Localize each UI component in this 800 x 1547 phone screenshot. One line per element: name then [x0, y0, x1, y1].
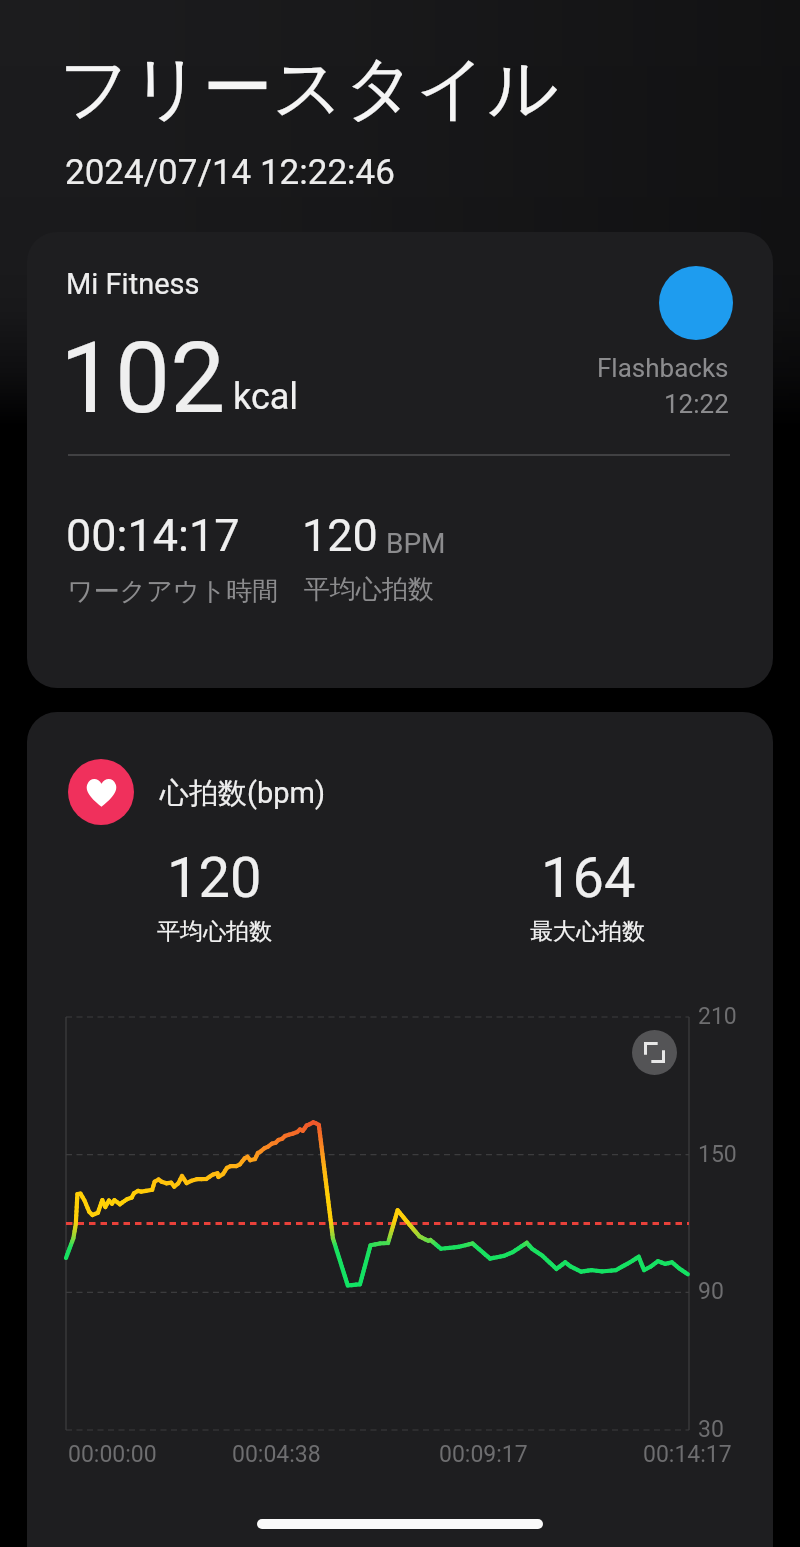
staticText: 平均心拍数	[157, 917, 272, 946]
staticText: 00:00:00	[68, 1441, 157, 1468]
staticText: 00:09:17	[439, 1441, 528, 1468]
staticText: 150	[698, 1141, 737, 1168]
staticText: BPM	[386, 527, 446, 560]
staticText: 120	[167, 845, 262, 911]
staticText: 164	[541, 845, 636, 911]
other: Heart rate	[68, 759, 134, 825]
staticText: 90	[698, 1278, 724, 1305]
staticText: 心拍数(bpm)	[160, 775, 326, 812]
button[interactable]: Mi Fitness	[27, 232, 773, 688]
staticText: ワークアウト時間	[67, 575, 279, 608]
staticText: 最大心拍数	[530, 917, 645, 946]
staticText: Flashbacks	[597, 353, 729, 383]
staticText: 00:14:17	[66, 509, 240, 562]
staticText: kcal	[233, 376, 299, 418]
staticText: 210	[698, 1003, 737, 1030]
staticText: Mi Fitness	[66, 267, 200, 301]
staticText: 120	[302, 509, 378, 562]
staticText: 12:22	[664, 389, 729, 419]
staticText: 102	[60, 321, 226, 436]
staticText: 平均心拍数	[304, 573, 434, 606]
staticText: 30	[698, 1416, 724, 1443]
button[interactable]: Expand chart	[632, 1030, 677, 1075]
staticText: 00:04:38	[232, 1441, 321, 1468]
staticText: 2024/07/14 12:22:46	[65, 152, 395, 193]
staticText: 00:14:17	[643, 1441, 732, 1468]
button[interactable]: Flashbacks	[659, 266, 733, 340]
staticText: フリースタイル	[59, 45, 559, 133]
